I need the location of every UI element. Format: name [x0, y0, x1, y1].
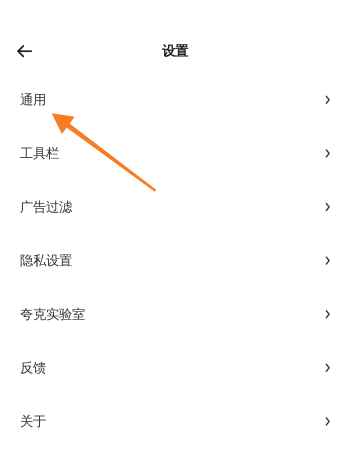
- button[interactable]: 夸克实验室: [0, 287, 350, 341]
- staticText: 隐私设置: [20, 252, 72, 269]
- button[interactable]: 关于: [0, 395, 350, 448]
- button[interactable]: Back: [0, 31, 46, 71]
- staticText: 工具栏: [20, 145, 59, 162]
- staticText: 关于: [20, 413, 46, 430]
- staticText: 反馈: [20, 360, 46, 376]
- staticText: 夸克实验室: [20, 306, 85, 322]
- staticText: 通用: [20, 92, 46, 108]
- staticText: 广告过滤: [20, 199, 72, 215]
- staticText: 设置: [162, 43, 188, 59]
- button[interactable]: 隐私设置: [0, 234, 350, 287]
- button[interactable]: 通用: [0, 73, 350, 127]
- button[interactable]: 反馈: [0, 341, 350, 395]
- button[interactable]: 广告过滤: [0, 180, 350, 234]
- button[interactable]: 工具栏: [0, 127, 350, 180]
